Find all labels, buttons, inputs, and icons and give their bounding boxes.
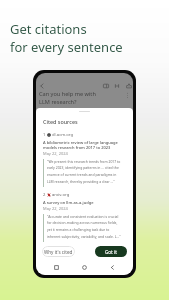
button[interactable]: Back [109,264,116,271]
staticText: May 22, 2024 [43,151,68,156]
button[interactable]: Compare [113,82,121,90]
button[interactable]: Share [125,82,133,90]
staticText: May 22, 2024 [43,206,68,211]
staticText: Got it [105,249,117,255]
staticText: 1 [43,132,46,138]
staticText: dl.acm.org [52,132,73,138]
button[interactable]: Back [38,82,46,90]
button[interactable]: Home [81,264,88,271]
staticText: "We present this research trends from 20… [47,159,121,184]
staticText: Get citations [10,20,87,38]
button[interactable]: 1 [43,132,127,187]
staticText: Can you help me with LLM research? [39,90,96,105]
staticText: Why it's cited [44,249,73,255]
button[interactable]: Recent apps [53,264,60,271]
button[interactable]: Got it [95,246,127,257]
staticText: arxiv.org [52,192,70,198]
staticText: Cited sources [43,118,78,125]
staticText: for every sentence [10,38,123,56]
staticText: "Accurate and consistent evaluation is c… [47,214,121,239]
staticText: A bibliometric review of large language … [43,140,118,150]
button[interactable]: Saved sources [102,82,110,90]
button[interactable]: 2 [43,192,127,242]
staticText: A survey on llm-as-a-judge [43,200,94,205]
staticText: 2 [43,192,46,198]
button[interactable]: Why it's cited [42,246,75,257]
